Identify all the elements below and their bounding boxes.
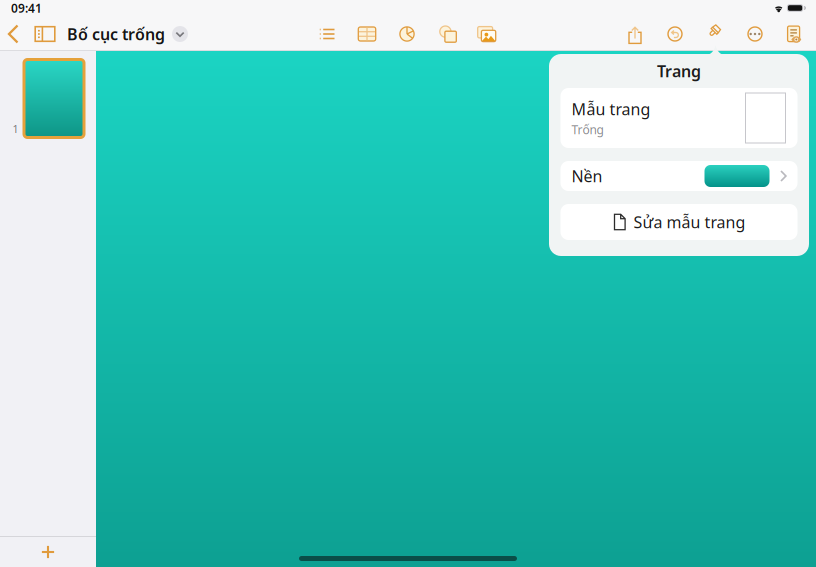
staticText: Nền — [571, 165, 602, 187]
button[interactable]: More — [735, 20, 775, 48]
button[interactable]: Insert chart — [387, 20, 427, 48]
button[interactable]: Bố cục trống — [63, 20, 192, 48]
staticText: Bố cục trống — [67, 23, 165, 45]
button[interactable]: Undo — [655, 20, 695, 48]
button[interactable]: Sửa mẫu trang — [560, 204, 797, 240]
button[interactable]: Sidebar — [27, 20, 63, 48]
staticText: 1 — [12, 122, 18, 136]
staticText: Sửa mẫu trang — [633, 211, 745, 233]
button[interactable]: Insert shape — [427, 20, 467, 48]
button[interactable]: Add page — [0, 537, 96, 567]
button[interactable]: Insert media — [467, 20, 507, 48]
button[interactable]: Nền — [560, 161, 797, 191]
button[interactable]: Format — [695, 20, 735, 48]
button[interactable]: Insert list — [307, 20, 347, 48]
staticText: Trang — [657, 60, 701, 82]
button[interactable]: Share — [615, 20, 655, 48]
button[interactable]: Mẫu trang — [560, 88, 797, 148]
staticText: Mẫu trang — [571, 98, 650, 120]
staticText: Trống — [571, 122, 603, 138]
button[interactable]: 1 — [4, 51, 91, 145]
staticText: 09:41 — [11, 0, 42, 16]
button[interactable]: Document options — [775, 20, 815, 48]
button[interactable]: Back — [0, 20, 27, 48]
button[interactable]: Insert table — [347, 20, 387, 48]
